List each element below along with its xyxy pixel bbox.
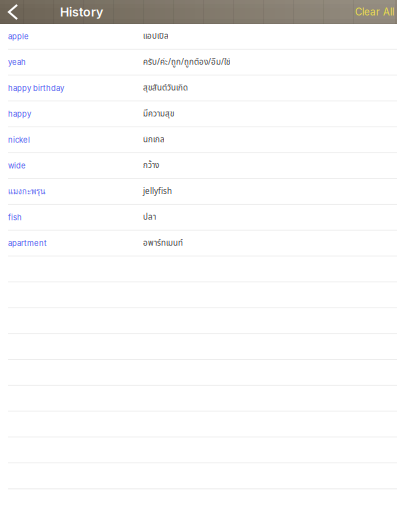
staticText: มีความสุข: [143, 108, 174, 120]
staticText: แมงกะพรุน: [8, 185, 45, 198]
button[interactable]: apple: [0, 24, 397, 50]
staticText: กว้าง: [143, 160, 159, 172]
staticText: ปลา: [143, 211, 156, 223]
button[interactable]: Clear All: [355, 0, 397, 24]
button[interactable]: apartment: [0, 231, 397, 257]
staticText: สุขสันต์วันเกิด: [143, 82, 188, 94]
staticText: jellyfish: [143, 185, 172, 198]
staticText: wide: [8, 161, 26, 170]
staticText: yeah: [8, 58, 26, 67]
button[interactable]: แมงกะพรุน: [0, 179, 397, 205]
staticText: แอปเปิล: [143, 30, 169, 42]
button[interactable]: happy: [0, 102, 397, 127]
staticText: fish: [8, 213, 22, 222]
button[interactable]: fish: [0, 205, 397, 231]
staticText: apple: [8, 32, 29, 41]
button[interactable]: happy birthday: [0, 76, 397, 102]
staticText: นิกเกิล: [143, 134, 165, 146]
staticText: ครับ/ค่ะ/ถูก/ถูกต้อง/อืม/ใช่: [143, 56, 230, 68]
staticText: nickel: [8, 135, 30, 144]
staticText: Clear All: [355, 6, 394, 18]
button[interactable]: Back: [0, 0, 26, 24]
staticText: happy: [8, 109, 31, 119]
button[interactable]: nickel: [0, 127, 397, 153]
staticText: อพาร์ทเมนท์: [143, 237, 183, 249]
staticText: History: [60, 4, 103, 19]
staticText: happy birthday: [8, 83, 64, 93]
button[interactable]: wide: [0, 153, 397, 179]
button[interactable]: yeah: [0, 50, 397, 76]
staticText: apartment: [8, 238, 47, 248]
